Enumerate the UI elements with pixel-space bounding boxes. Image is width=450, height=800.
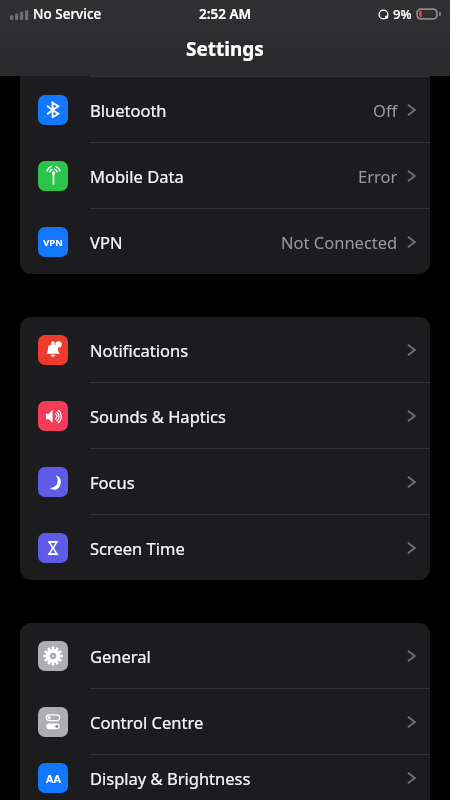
staticText: Off [373,99,398,121]
staticText: No Service [33,5,102,23]
staticText: Sounds & Haptics [90,405,226,427]
staticText: Bluetooth [90,99,167,121]
staticText: Error [358,165,398,187]
staticText: Not Connected [281,231,398,253]
staticText: 9% [393,5,412,23]
button[interactable]: VPN [20,209,430,274]
staticText: Screen Time [90,537,185,559]
button[interactable]: Focus [20,449,430,514]
staticText: AA [46,771,61,786]
button[interactable]: Control Centre [20,689,430,754]
staticText: VPN [43,236,63,249]
button[interactable]: Mobile Data [20,143,430,208]
button[interactable]: AA [20,755,430,800]
staticText: 2:52 AM [199,5,252,23]
button[interactable]: Bluetooth [20,77,430,142]
button[interactable]: General [20,623,430,688]
staticText: Focus [90,471,135,493]
staticText: Mobile Data [90,165,184,187]
staticText: Display & Brightness [90,767,251,789]
staticText: Settings [186,36,264,62]
staticText: Control Centre [90,711,204,733]
button[interactable]: Notifications [20,317,430,382]
staticText: General [90,645,151,667]
button[interactable]: Screen Time [20,515,430,580]
button[interactable]: Sounds & Haptics [20,383,430,448]
staticText: VPN [90,231,123,253]
staticText: Notifications [90,339,189,361]
